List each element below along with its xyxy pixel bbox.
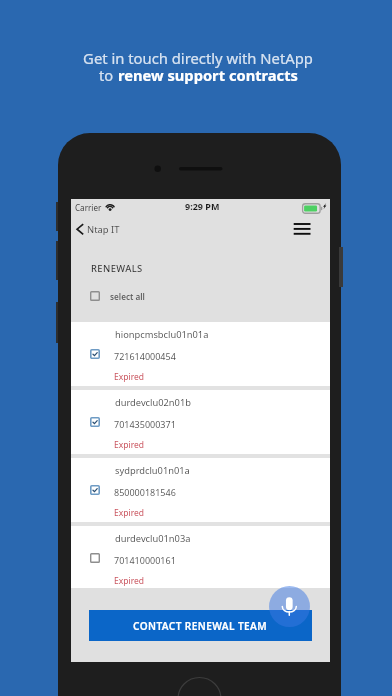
staticText: to [99,65,118,85]
staticText: 850000181546 [114,486,176,498]
staticText: 701435000371 [114,418,176,430]
staticText: sydprdclu01n01a [115,464,190,477]
button[interactable]: Voice search [269,586,310,627]
staticText: renew support contracts [118,65,298,85]
staticText: durdevclu02n01b [115,396,191,409]
staticText: Ntap IT [87,223,120,236]
button[interactable]: Menu [286,218,316,248]
staticText: hionpcmsbclu01n01a [115,328,209,341]
button[interactable]: durdevclu02n01b [71,390,330,454]
staticText: Expired [114,507,145,519]
staticText: 9:29 PM [185,200,220,212]
staticText: Get in touch directly with NetApp [83,48,313,68]
staticText: Expired [114,371,145,383]
button[interactable]: Ntap IT [73,218,131,244]
button[interactable]: sydprdclu01n01a [71,458,330,522]
staticText: 701410000161 [114,554,176,566]
staticText: Expired [114,439,145,451]
staticText: RENEWALS [91,262,143,275]
staticText: CONTACT RENEWAL TEAM [133,619,268,633]
staticText: select all [110,291,145,302]
button[interactable]: CONTACT RENEWAL TEAM [89,610,312,641]
staticText: 721614000454 [114,350,176,362]
button[interactable]: durdevclu01n03a [71,526,330,590]
button[interactable]: hionpcmsbclu01n01a [71,322,330,386]
button[interactable]: select all [85,285,145,307]
staticText: Expired [114,575,145,587]
staticText: Carrier [75,202,102,213]
staticText: durdevclu01n03a [115,532,191,545]
